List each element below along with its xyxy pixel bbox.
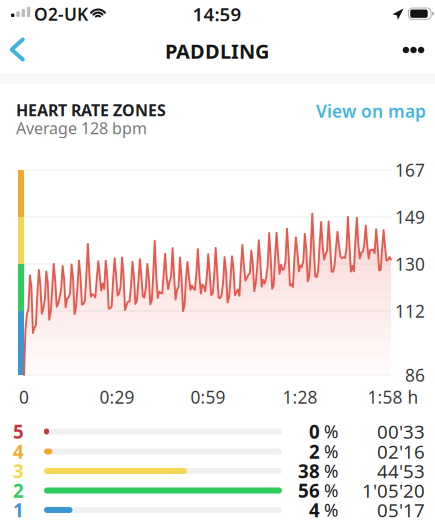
staticText: 44'53 bbox=[377, 459, 425, 483]
button[interactable]: View on map bbox=[296, 96, 426, 126]
staticText: 112 bbox=[395, 299, 425, 322]
button[interactable]: Back bbox=[0, 26, 40, 72]
staticText: 02'16 bbox=[377, 439, 425, 464]
staticText: 2 bbox=[309, 439, 320, 464]
staticText: 00'33 bbox=[377, 419, 425, 444]
staticText: Average 128 bpm bbox=[16, 117, 147, 139]
staticText: 4 bbox=[309, 498, 320, 522]
staticText: % bbox=[324, 459, 338, 482]
staticText: 0:59 bbox=[190, 385, 225, 408]
staticText: 5 bbox=[13, 419, 24, 444]
staticText: 86 bbox=[405, 363, 425, 386]
staticText: 1:58 h bbox=[367, 385, 418, 408]
button[interactable]: More options bbox=[389, 27, 435, 73]
staticText: % bbox=[324, 420, 338, 443]
staticText: % bbox=[324, 498, 338, 521]
staticText: 1'05'20 bbox=[362, 478, 425, 503]
staticText: View on map bbox=[316, 99, 426, 122]
staticText: 4 bbox=[13, 439, 24, 464]
staticText: 2 bbox=[13, 478, 24, 503]
staticText: 1 bbox=[13, 498, 24, 522]
staticText: 167 bbox=[395, 158, 425, 181]
staticText: 3 bbox=[13, 459, 24, 483]
staticText: 05'17 bbox=[377, 498, 425, 522]
staticText: 0:29 bbox=[99, 385, 134, 408]
staticText: 130 bbox=[395, 252, 425, 275]
staticText: 56 bbox=[298, 478, 320, 503]
staticText: HEART RATE ZONES bbox=[16, 99, 166, 121]
staticText: 14:59 bbox=[192, 2, 241, 26]
staticText: 149 bbox=[395, 205, 425, 228]
staticText: O2-UK bbox=[34, 2, 88, 25]
staticText: 1:28 bbox=[282, 385, 317, 408]
staticText: 0 bbox=[309, 419, 320, 444]
staticText: % bbox=[324, 440, 338, 463]
staticText: 0 bbox=[19, 385, 29, 408]
staticText: PADDLING bbox=[165, 38, 269, 64]
staticText: 38 bbox=[298, 459, 320, 483]
staticText: % bbox=[324, 479, 338, 502]
